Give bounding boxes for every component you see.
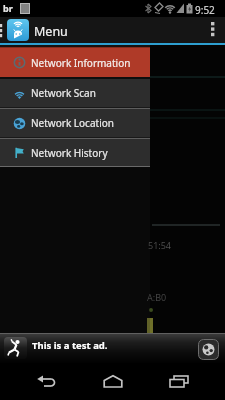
button[interactable]: Network History [0,139,150,166]
button[interactable] [201,18,225,42]
button[interactable] [146,363,212,400]
button[interactable]: Network Information [0,48,150,77]
staticText: Network Location [31,116,114,130]
staticText: 51:54 [148,239,172,251]
button[interactable] [14,363,80,400]
staticText: 9:52 [195,3,215,17]
button[interactable]: Network Location [0,109,150,137]
staticText: Network History [31,146,108,160]
button[interactable] [198,339,219,360]
button[interactable] [7,19,29,41]
staticText: Network Scan [31,86,96,100]
button[interactable]: This is a test ad. [0,333,225,363]
staticText: A:B0 [147,291,167,303]
staticText: Menu [34,23,68,40]
staticText: Network Information [31,56,131,70]
button[interactable]: Network Scan [0,79,150,107]
button[interactable] [80,363,146,400]
staticText: br [3,2,13,14]
staticText: This is a test ad. [32,339,108,352]
